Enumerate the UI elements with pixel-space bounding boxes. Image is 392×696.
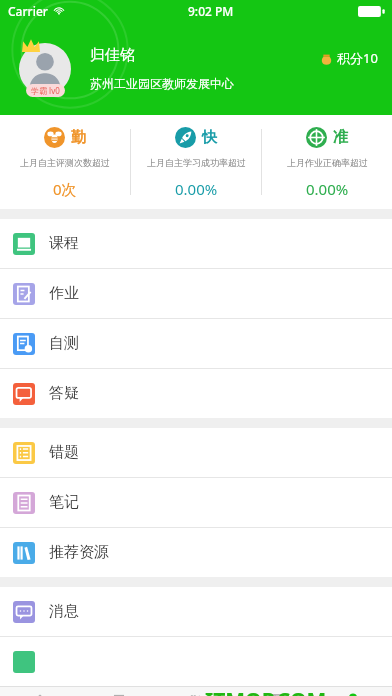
button[interactable]: 笔记 (0, 478, 392, 527)
button[interactable]: 首页 (0, 686, 79, 696)
staticText: 快 (202, 128, 217, 147)
button[interactable]: 作业 (0, 269, 392, 318)
staticText: 笔记 (49, 493, 79, 512)
button[interactable]: 快 (131, 115, 261, 209)
button[interactable]: 学习 (79, 686, 158, 696)
button[interactable]: 错题 (0, 428, 392, 477)
button[interactable]: 课程 (0, 219, 392, 268)
staticText: 0.00% (306, 179, 349, 199)
button[interactable]: 自测 (0, 319, 392, 368)
button[interactable]: 推荐资源 (0, 528, 392, 577)
staticText: 0次 (53, 179, 77, 199)
staticText: 上月作业正确率超过 (287, 157, 368, 168)
button[interactable]: 个人 (314, 686, 392, 696)
staticText: 作业 (49, 284, 79, 303)
button[interactable]: 错题 (236, 686, 314, 696)
staticText: 答疑 (49, 384, 79, 403)
button[interactable]: 答疑 (0, 369, 392, 418)
staticText: Carrier (8, 3, 48, 19)
staticText: 学霸 lv0 (31, 85, 60, 96)
staticText: 积分10 (337, 49, 378, 67)
staticText: 错题 (49, 443, 79, 462)
staticText: 课程 (49, 234, 79, 253)
staticText: ITMOP.COM (205, 686, 327, 696)
staticText: 0.00% (175, 179, 218, 199)
button[interactable]: 资源 (158, 686, 236, 696)
button[interactable]: 消息 (0, 587, 392, 636)
staticText: 推荐资源 (49, 543, 109, 562)
staticText: 上月自主学习成功率超过 (147, 157, 246, 168)
staticText: 勤 (71, 128, 86, 147)
button[interactable]: 勤 (0, 115, 130, 209)
staticText: 自测 (49, 334, 79, 353)
staticText: 准 (333, 128, 348, 147)
button[interactable]: 准 (262, 115, 392, 209)
staticText: 消息 (49, 602, 79, 621)
button[interactable] (0, 637, 392, 686)
staticText: 归佳铭 (90, 46, 135, 65)
staticText: 上月自主评测次数超过 (20, 157, 110, 168)
staticText: 苏州工业园区教师发展中心 (90, 76, 234, 91)
staticText: 9:02 PM (188, 3, 234, 19)
